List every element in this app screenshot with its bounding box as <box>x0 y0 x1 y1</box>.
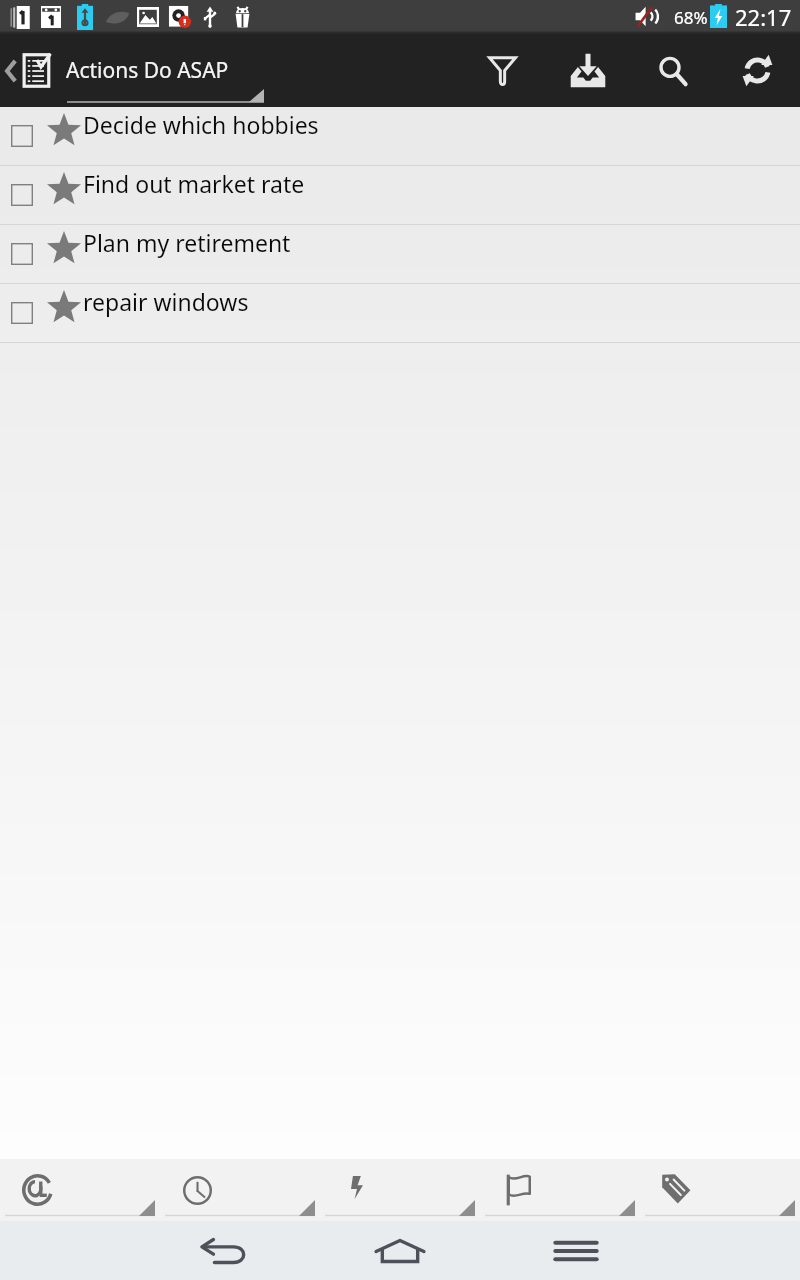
button[interactable]: Complete task <box>0 225 800 284</box>
button[interactable]: Complete task <box>11 302 33 324</box>
button[interactable]: Time <box>160 1159 320 1221</box>
button[interactable]: Complete task <box>0 284 800 343</box>
button[interactable]: Complete task <box>11 184 33 206</box>
button[interactable]: Back <box>184 1221 264 1280</box>
button[interactable]: Complete task <box>0 166 800 225</box>
staticText: repair windows <box>83 286 249 317</box>
button[interactable]: Complete task <box>11 125 33 147</box>
button[interactable]: Energy <box>320 1159 480 1221</box>
button[interactable]: Archive <box>545 34 630 107</box>
button[interactable]: Actions Do ASAP <box>0 34 270 107</box>
button[interactable]: Search <box>630 34 715 107</box>
staticText: Actions Do ASAP <box>66 56 229 85</box>
staticText: Plan my retirement <box>83 227 291 258</box>
staticText: 22:17 <box>735 2 792 32</box>
button[interactable]: Context <box>0 1159 160 1221</box>
button[interactable]: Goal <box>480 1159 640 1221</box>
button[interactable]: Recents <box>536 1221 616 1280</box>
button[interactable]: Tag <box>640 1159 800 1221</box>
button[interactable]: Filter <box>460 34 545 107</box>
button[interactable]: Refresh <box>715 34 800 107</box>
button[interactable]: Complete task <box>0 107 800 166</box>
staticText: Find out market rate <box>83 168 305 199</box>
staticText: 68% <box>674 6 708 29</box>
button[interactable]: Home <box>360 1221 440 1280</box>
staticText: Decide which hobbies <box>83 109 319 140</box>
button[interactable]: Complete task <box>11 243 33 265</box>
